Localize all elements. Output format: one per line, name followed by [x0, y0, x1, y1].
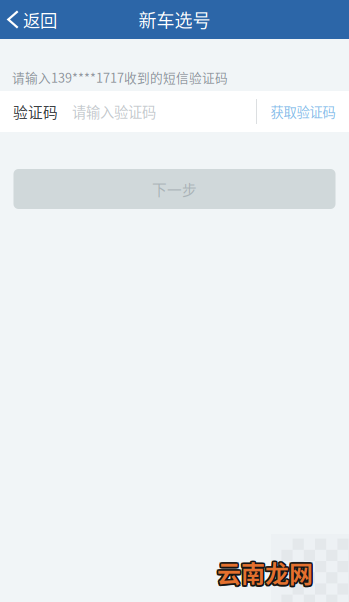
staticText: 云南龙网 — [217, 555, 313, 590]
staticText: 新车选号 — [138, 6, 210, 33]
staticText: 请输入验证码 — [72, 101, 156, 122]
staticText: 下一步 — [152, 178, 197, 200]
staticText: 云南龙网 — [219, 555, 315, 590]
staticText: 获取验证码 — [270, 102, 335, 121]
staticText: 返回 — [23, 7, 57, 32]
button[interactable]: 下一步 — [13, 169, 335, 209]
button[interactable]: 获取验证码 — [257, 91, 349, 132]
button[interactable]: 返回 — [0, 0, 67, 39]
staticText: 云南龙网 — [215, 555, 311, 590]
staticText: 云南龙网 — [216, 554, 312, 588]
staticText: 云南龙网 — [217, 553, 313, 588]
staticText: 验证码 — [13, 101, 58, 122]
staticText: 云南龙网 — [216, 556, 312, 591]
staticText: 云南龙网 — [217, 557, 313, 591]
staticText: 云南龙网 — [218, 556, 314, 591]
staticText: 请输入139****1717收到的短信验证码 — [12, 68, 228, 86]
staticText: 云南龙网 — [218, 554, 314, 588]
